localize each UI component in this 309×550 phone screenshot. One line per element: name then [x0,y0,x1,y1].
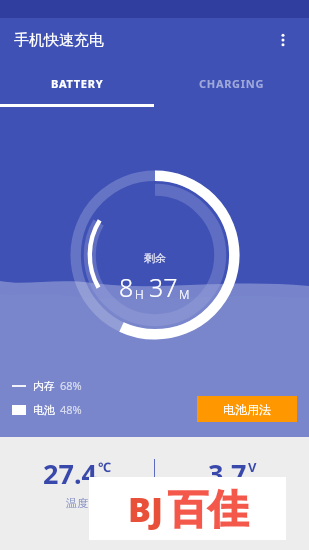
button[interactable]: More options [265,22,301,58]
staticText: BATTERY [51,76,104,91]
staticText: BJ [128,486,163,532]
button[interactable]: CHARGING [154,62,309,104]
staticText: 剩余 [144,251,166,265]
staticText: M [179,286,190,302]
staticText: V [248,458,257,476]
staticText: 8 [119,270,134,304]
button[interactable]: 3.7 [155,437,309,510]
staticText: 百佳 [168,484,248,534]
staticText: 68% [60,378,82,393]
staticText: CHARGING [199,76,265,91]
button[interactable]: BATTERY [0,62,154,104]
staticText: 37 [149,270,178,304]
staticText: 电池用法 [223,402,271,417]
staticText: ℃ [98,458,112,476]
staticText: 温度 [66,496,88,510]
button[interactable]: 27.4 [0,437,154,510]
staticText: 48% [60,402,82,417]
staticText: 内存 [33,379,55,393]
staticText: 电压 [221,496,243,510]
staticText: 电池 [33,403,55,417]
staticText: 手机快速充电 [14,31,104,50]
staticText: 3.7 [208,455,247,492]
staticText: H [135,286,144,302]
button[interactable]: 电池用法 [197,396,297,422]
staticText: 27.4 [43,455,97,492]
